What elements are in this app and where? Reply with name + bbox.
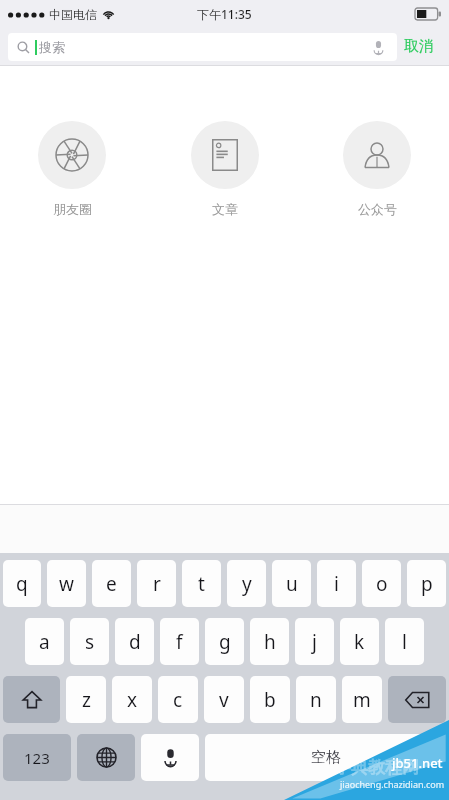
staticText: i <box>334 571 339 597</box>
staticText: 中国电信 <box>49 7 97 22</box>
staticText: z <box>82 687 91 713</box>
button[interactable]: 空格 <box>205 734 446 781</box>
staticText: r <box>153 571 161 597</box>
staticText: p <box>421 571 433 597</box>
staticText: h <box>264 629 276 655</box>
button[interactable]: z <box>66 676 106 723</box>
staticText: x <box>127 687 138 713</box>
staticText: g <box>219 629 231 655</box>
staticText: 空格 <box>311 748 341 767</box>
staticText: l <box>402 629 407 655</box>
button[interactable]: Shift <box>3 676 60 723</box>
button[interactable]: q <box>3 560 41 607</box>
button[interactable]: l <box>385 618 424 665</box>
staticText: 文章 <box>212 201 238 217</box>
staticText: jb51.net <box>392 754 443 772</box>
staticText: n <box>310 687 322 713</box>
staticText: c <box>173 687 183 713</box>
staticText: o <box>376 571 388 597</box>
button[interactable]: 公众号 <box>327 121 427 217</box>
button[interactable]: Change keyboard <box>77 734 135 781</box>
staticText: k <box>354 629 365 655</box>
button[interactable]: j <box>295 618 334 665</box>
staticText: 朋友圈 <box>53 201 92 217</box>
button[interactable]: Voice search <box>368 37 388 57</box>
button[interactable]: 文章 <box>175 121 275 217</box>
button[interactable]: n <box>296 676 336 723</box>
button[interactable]: g <box>205 618 244 665</box>
staticText: e <box>106 571 117 597</box>
button[interactable]: 朋友圈 <box>22 121 122 217</box>
button[interactable]: m <box>342 676 382 723</box>
button[interactable]: u <box>272 560 311 607</box>
button[interactable]: x <box>112 676 152 723</box>
staticText: v <box>219 687 229 713</box>
button[interactable]: k <box>340 618 379 665</box>
staticText: b <box>264 687 276 713</box>
button[interactable]: v <box>204 676 244 723</box>
button[interactable]: 搜索 <box>8 33 397 61</box>
button[interactable]: y <box>227 560 266 607</box>
staticText: d <box>129 629 141 655</box>
staticText: s <box>85 629 95 655</box>
staticText: 查字典教程网 <box>317 757 419 778</box>
staticText: 下午11:35 <box>197 6 252 22</box>
button[interactable]: p <box>407 560 446 607</box>
button[interactable]: o <box>362 560 401 607</box>
button[interactable]: e <box>92 560 131 607</box>
staticText: f <box>176 629 183 655</box>
button[interactable]: r <box>137 560 176 607</box>
button[interactable]: s <box>70 618 109 665</box>
button[interactable]: d <box>115 618 154 665</box>
staticText: 搜索 <box>39 39 65 55</box>
button[interactable]: h <box>250 618 289 665</box>
button[interactable]: 123 <box>3 734 71 781</box>
button[interactable]: a <box>25 618 64 665</box>
staticText: y <box>242 571 252 597</box>
button[interactable]: i <box>317 560 356 607</box>
staticText: t <box>198 571 205 597</box>
button[interactable]: 取消 <box>397 34 441 59</box>
button[interactable]: Backspace <box>388 676 446 723</box>
staticText: 公众号 <box>358 201 397 217</box>
button[interactable]: b <box>250 676 290 723</box>
staticText: q <box>16 571 28 597</box>
button[interactable]: w <box>47 560 86 607</box>
button[interactable]: f <box>160 618 199 665</box>
staticText: u <box>286 571 298 597</box>
staticText: w <box>59 571 74 597</box>
button[interactable]: t <box>182 560 221 607</box>
staticText: m <box>353 687 371 713</box>
button[interactable]: c <box>158 676 198 723</box>
staticText: a <box>39 629 50 655</box>
staticText: jiaocheng.chazidian.com <box>340 778 445 790</box>
staticText: 取消 <box>404 37 434 56</box>
staticText: j <box>312 629 317 655</box>
staticText: 123 <box>24 748 50 768</box>
button[interactable]: Dictation <box>141 734 199 781</box>
